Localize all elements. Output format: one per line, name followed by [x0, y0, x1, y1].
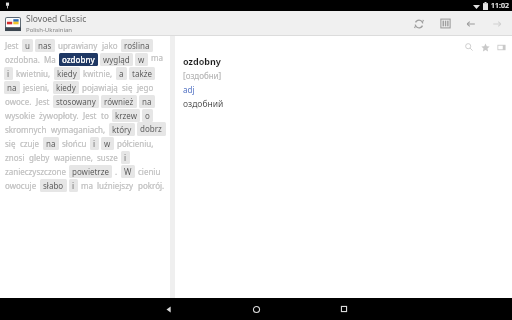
- staticText: również: [104, 96, 134, 107]
- staticText: pokrój.: [138, 180, 165, 191]
- staticText: kiedy: [57, 68, 77, 79]
- staticText: ozdobna.: [5, 54, 40, 65]
- button[interactable]: Dictionaries: [432, 11, 458, 36]
- staticText: ozdobny: [183, 55, 221, 67]
- button[interactable]: a: [116, 67, 127, 80]
- staticText: i: [124, 152, 127, 163]
- staticText: luźniejszy: [97, 180, 134, 191]
- staticText: także: [132, 68, 152, 79]
- button[interactable]: wygląd: [100, 53, 133, 66]
- button[interactable]: w: [101, 137, 114, 150]
- staticText: marcu: [151, 52, 165, 66]
- button[interactable]: u: [22, 39, 33, 52]
- staticText: jesieni,: [23, 82, 50, 93]
- button[interactable]: ozdobny: [59, 53, 98, 66]
- button[interactable]: Forward: [484, 11, 510, 36]
- button[interactable]: nas: [35, 39, 55, 52]
- staticText: krzew: [115, 110, 137, 121]
- staticText: cieniu: [138, 166, 161, 177]
- staticText: Slovoed Classic: [26, 13, 87, 25]
- button[interactable]: na: [139, 95, 155, 108]
- staticText: wygląd: [103, 54, 130, 65]
- button[interactable]: o: [142, 109, 153, 122]
- button[interactable]: i: [69, 179, 78, 192]
- staticText: roślina: [124, 40, 150, 51]
- staticText: Jest: [83, 110, 97, 121]
- staticText: który: [112, 124, 132, 135]
- button[interactable]: Back: [458, 11, 484, 36]
- staticText: i: [72, 180, 75, 191]
- staticText: nas: [38, 40, 52, 51]
- staticText: powietrze: [72, 166, 109, 177]
- staticText: i: [7, 68, 10, 79]
- staticText: półcieniu,: [117, 138, 154, 149]
- staticText: jako: [102, 40, 118, 51]
- button[interactable]: również: [101, 95, 137, 108]
- staticText: czuje: [20, 138, 40, 149]
- staticText: i: [93, 138, 96, 149]
- staticText: owocuje: [5, 180, 37, 191]
- button[interactable]: także: [129, 67, 155, 80]
- staticText: wysokie: [5, 110, 35, 121]
- button[interactable]: roślina: [121, 39, 153, 52]
- button[interactable]: Recents: [322, 298, 366, 320]
- staticText: na: [7, 82, 17, 93]
- button[interactable]: i: [4, 67, 13, 80]
- staticText: znosi: [5, 152, 25, 163]
- staticText: zanieczyszczone: [5, 166, 66, 177]
- button[interactable]: Pin entry: [477, 39, 493, 55]
- button[interactable]: W: [121, 165, 135, 178]
- staticText: jego: [137, 82, 154, 93]
- staticText: .: [115, 166, 118, 177]
- staticText: kwietniu,: [16, 68, 51, 79]
- button[interactable]: stosowany: [53, 95, 99, 108]
- staticText: susze: [97, 152, 118, 163]
- staticText: na: [142, 96, 152, 107]
- staticText: żywopłoty.: [39, 110, 79, 121]
- button[interactable]: który: [109, 123, 135, 136]
- button[interactable]: kiedy: [54, 67, 80, 80]
- button[interactable]: powietrze: [69, 165, 112, 178]
- button[interactable]: kiedy: [53, 81, 79, 94]
- staticText: [оздобни]: [183, 70, 222, 81]
- staticText: skromnych: [5, 124, 47, 135]
- button[interactable]: i: [90, 137, 99, 150]
- staticText: ozdobny: [62, 54, 95, 65]
- staticText: w: [104, 138, 111, 149]
- staticText: ma: [81, 180, 93, 191]
- button[interactable]: dobrze: [137, 122, 166, 136]
- staticText: się: [122, 82, 133, 93]
- button[interactable]: krzew: [112, 109, 140, 122]
- staticText: się: [5, 138, 16, 149]
- staticText: to: [101, 110, 109, 121]
- staticText: kiedy: [56, 82, 76, 93]
- staticText: Jest: [36, 96, 50, 107]
- button[interactable]: Back: [146, 298, 190, 320]
- staticText: słabo: [43, 180, 64, 191]
- staticText: Polish-Ukrainian: [26, 26, 73, 34]
- staticText: o: [145, 110, 150, 121]
- staticText: owoce.: [5, 96, 32, 107]
- button[interactable]: Search: [461, 39, 477, 55]
- staticText: kwitnie,: [83, 68, 113, 79]
- button[interactable]: na: [43, 137, 59, 150]
- button[interactable]: Refresh: [406, 11, 432, 36]
- staticText: na: [46, 138, 56, 149]
- button[interactable]: Home: [234, 298, 278, 320]
- staticText: uprawiany: [58, 40, 98, 51]
- button[interactable]: słabo: [40, 179, 67, 192]
- staticText: stosowany: [56, 96, 96, 107]
- button[interactable]: i: [121, 151, 130, 164]
- button[interactable]: na: [4, 81, 20, 94]
- staticText: gleby: [29, 152, 50, 163]
- staticText: 11:02: [491, 1, 509, 11]
- staticText: Jest: [5, 40, 19, 51]
- staticText: оздобний: [183, 98, 224, 110]
- staticText: wymaganiach,: [51, 124, 106, 135]
- staticText: słońcu: [62, 138, 87, 149]
- button[interactable]: w: [135, 53, 148, 66]
- button[interactable]: Flash cards: [493, 39, 509, 55]
- staticText: Ma: [44, 54, 56, 65]
- staticText: adj: [183, 84, 195, 95]
- staticText: pojawiają: [82, 82, 118, 93]
